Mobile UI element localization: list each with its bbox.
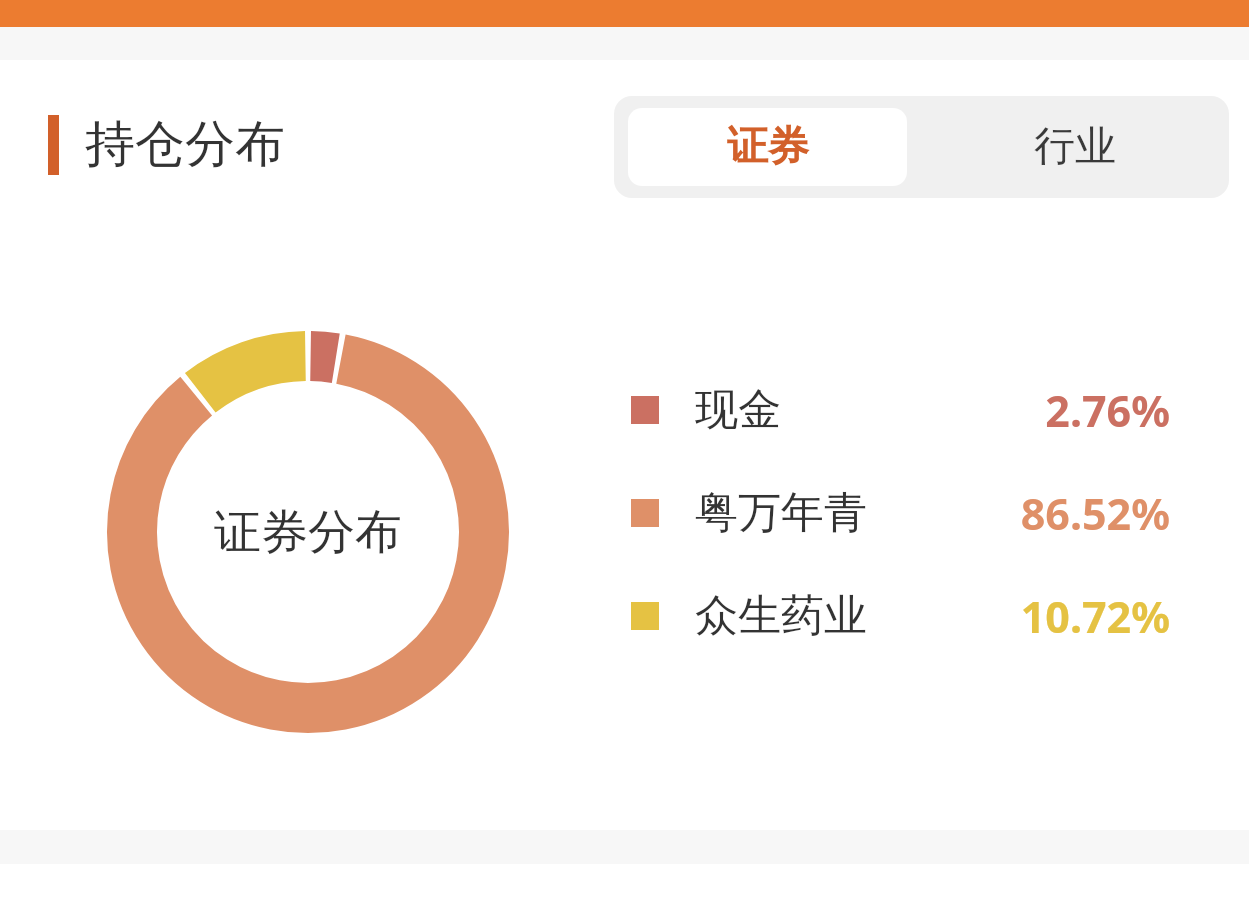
staticText: 2.76% bbox=[1045, 381, 1170, 440]
button[interactable]: 现金 bbox=[631, 375, 1170, 445]
staticText: 行业 bbox=[1034, 121, 1116, 173]
button[interactable]: 众生药业 bbox=[631, 581, 1170, 651]
button[interactable]: 粤万年青 bbox=[631, 478, 1170, 548]
staticText: 10.72% bbox=[1020, 587, 1170, 646]
staticText: 众生药业 bbox=[695, 589, 867, 643]
staticText: 持仓分布 bbox=[85, 113, 285, 176]
button[interactable]: 行业 bbox=[921, 96, 1229, 198]
button[interactable]: 证券 bbox=[628, 108, 907, 186]
staticText: 现金 bbox=[695, 383, 781, 437]
staticText: 86.52% bbox=[1020, 484, 1170, 543]
staticText: 证券 bbox=[727, 121, 809, 173]
staticText: 粤万年青 bbox=[695, 486, 867, 540]
staticText: 证券分布 bbox=[214, 503, 402, 562]
